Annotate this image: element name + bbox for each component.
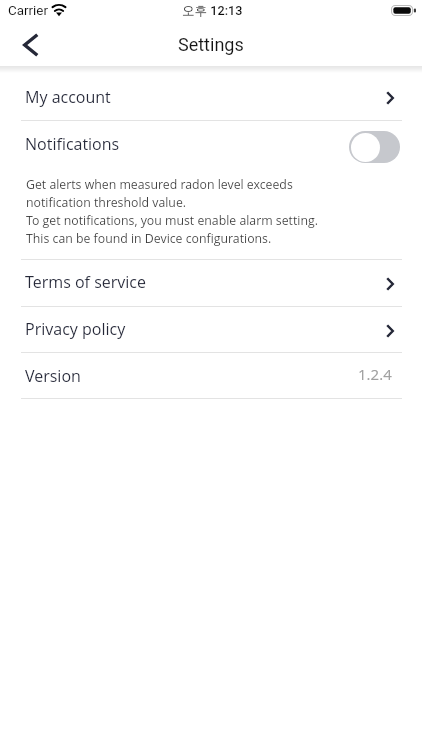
staticText: Version	[25, 365, 81, 387]
staticText: 1.2.4	[358, 364, 392, 384]
staticText: Terms of service	[25, 271, 146, 293]
staticText: My account	[25, 86, 111, 108]
button[interactable]: Terms of service	[0, 260, 422, 306]
button[interactable]: Notifications, off	[349, 131, 400, 163]
button[interactable]: Version	[0, 353, 422, 398]
button[interactable]: My account	[0, 69, 422, 120]
staticText: 오후 12:13	[182, 3, 243, 19]
staticText: Settings	[178, 34, 244, 55]
other: Battery full	[391, 5, 416, 16]
staticText: Get alerts when measured radon level exc…	[26, 176, 318, 247]
other: Wi-Fi signal	[51, 4, 67, 16]
staticText: Notifications	[25, 133, 120, 155]
button[interactable]: Back	[0, 26, 56, 67]
staticText: Privacy policy	[25, 318, 126, 340]
button[interactable]: Privacy policy	[0, 307, 422, 352]
staticText: Carrier	[8, 3, 48, 19]
